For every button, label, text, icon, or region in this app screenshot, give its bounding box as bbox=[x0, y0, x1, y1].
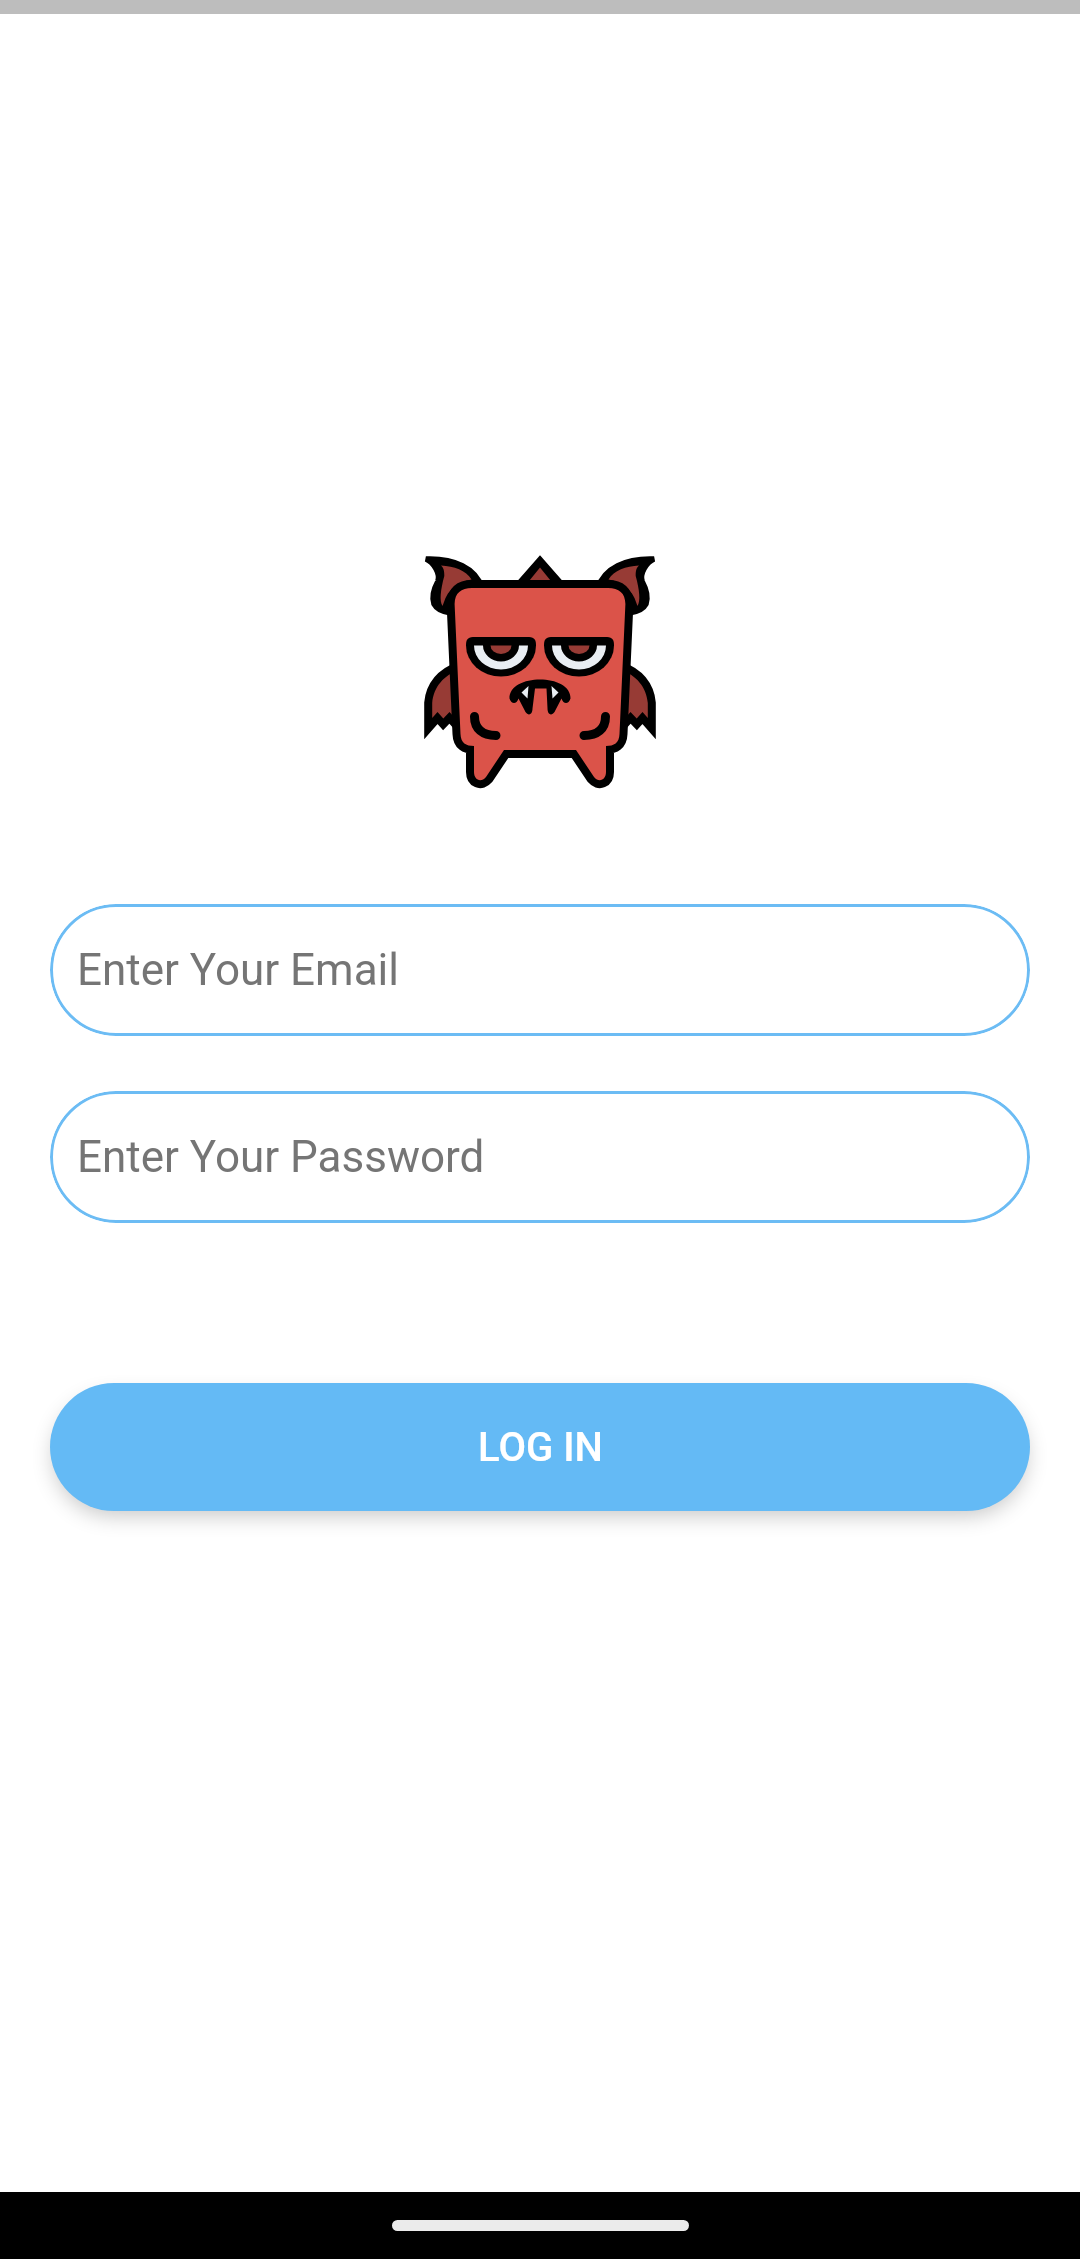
button[interactable]: LOG IN bbox=[50, 1383, 1030, 1511]
other: App logo bbox=[418, 550, 662, 794]
staticText: LOG IN bbox=[478, 1424, 603, 1471]
button[interactable]: Enter Your Email bbox=[50, 904, 1030, 1036]
staticText: Enter Your Email bbox=[77, 944, 399, 996]
button[interactable]: Enter Your Password bbox=[50, 1091, 1030, 1223]
staticText: Enter Your Password bbox=[77, 1131, 485, 1183]
